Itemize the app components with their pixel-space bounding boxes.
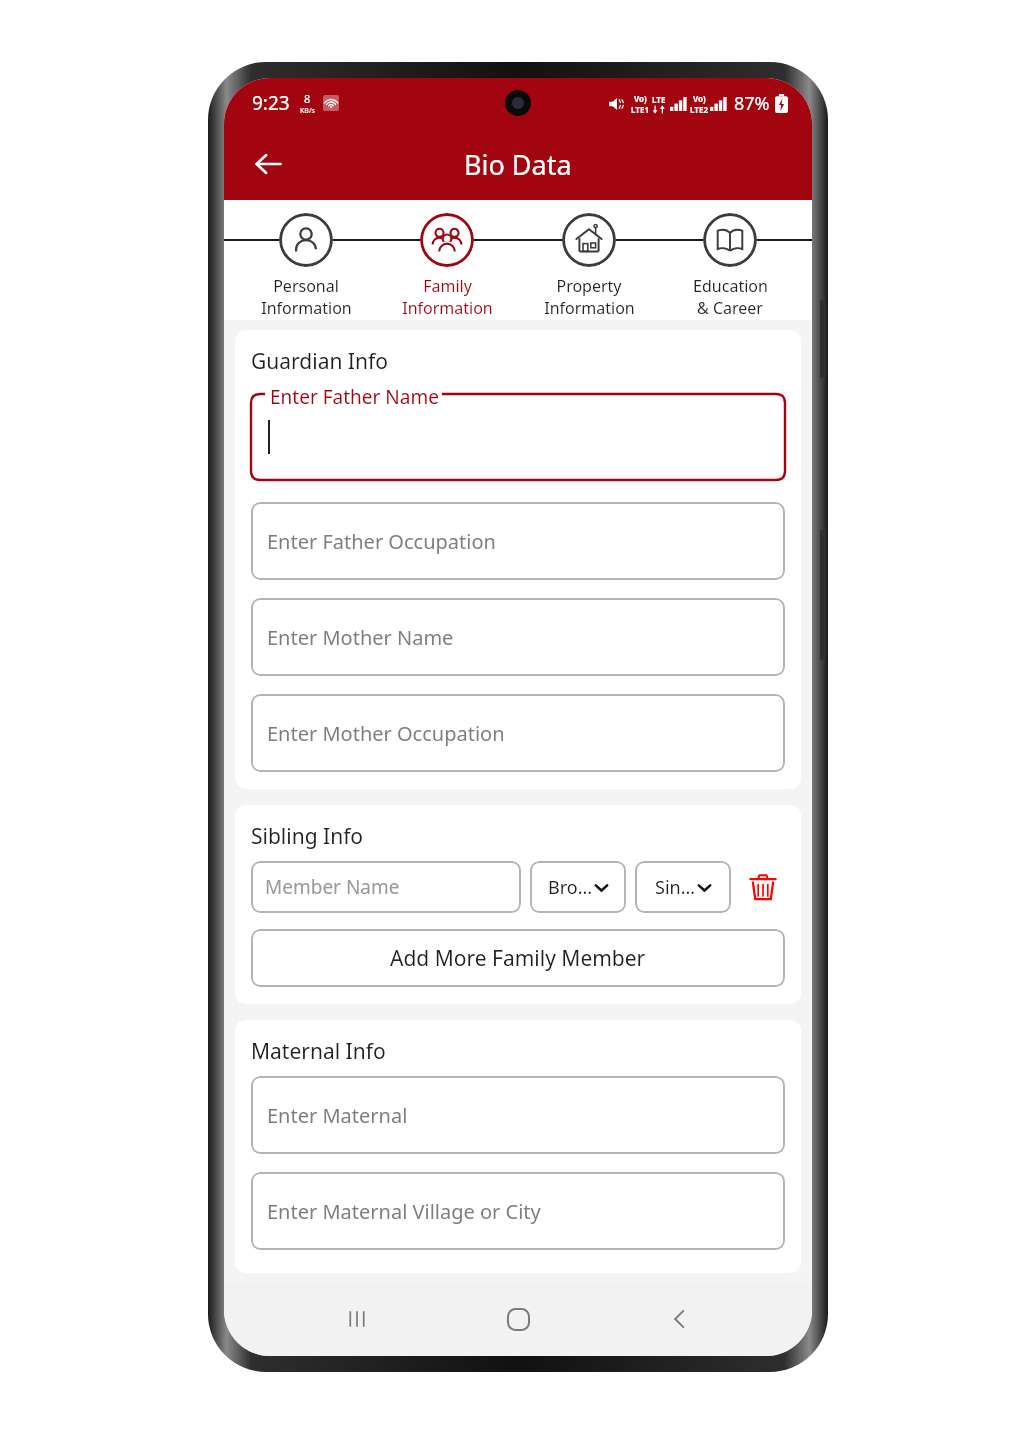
button[interactable]: Personal bbox=[247, 200, 365, 319]
staticText: Bro... bbox=[548, 875, 593, 900]
button[interactable]: Enter Maternal bbox=[251, 1076, 785, 1154]
staticText: Information bbox=[261, 297, 352, 319]
staticText: Add More Family Member bbox=[390, 944, 646, 973]
button[interactable]: Enter Mother Name bbox=[251, 598, 785, 676]
staticText: Enter Maternal bbox=[267, 1102, 408, 1129]
staticText: LTE2 bbox=[690, 104, 708, 115]
staticText: Maternal Info bbox=[251, 1037, 386, 1066]
staticText: Information bbox=[402, 297, 493, 319]
staticText: Education bbox=[693, 275, 768, 297]
button[interactable]: Member Name bbox=[251, 861, 521, 913]
button[interactable]: Bro... bbox=[530, 861, 626, 913]
staticText: LTE1 bbox=[631, 104, 649, 115]
staticText: Property bbox=[556, 275, 622, 297]
staticText: Family bbox=[423, 275, 472, 297]
button[interactable]: Enter Father Occupation bbox=[251, 502, 785, 580]
staticText: Information bbox=[544, 297, 635, 319]
button[interactable]: Delete sibling bbox=[741, 865, 785, 909]
button[interactable]: Enter Father Name bbox=[251, 384, 785, 480]
button[interactable]: Home bbox=[489, 1290, 547, 1348]
staticText: Enter Father Occupation bbox=[267, 528, 496, 555]
button[interactable]: Sin... bbox=[635, 861, 731, 913]
staticText: 8 bbox=[304, 91, 311, 106]
staticText: Sibling Info bbox=[251, 822, 364, 851]
staticText: 9:23 bbox=[252, 90, 290, 116]
staticText: Sin... bbox=[655, 875, 696, 900]
staticText: Enter Mother Occupation bbox=[267, 720, 505, 747]
button[interactable]: Back bbox=[651, 1290, 709, 1348]
staticText: 87% bbox=[734, 91, 770, 116]
staticText: Guardian Info bbox=[251, 347, 388, 376]
staticText: Enter Maternal Village or City bbox=[267, 1198, 541, 1225]
staticText: Personal bbox=[273, 275, 339, 297]
staticText: Enter Father Name bbox=[270, 384, 439, 410]
button[interactable]: Enter Maternal Village or City bbox=[251, 1172, 785, 1250]
staticText: Enter Mother Name bbox=[267, 624, 454, 651]
staticText: LTE bbox=[652, 94, 666, 105]
staticText: Vo) bbox=[634, 93, 647, 104]
button[interactable]: Enter Mother Occupation bbox=[251, 694, 785, 772]
button[interactable]: Family bbox=[388, 200, 506, 319]
button[interactable]: Property bbox=[530, 200, 648, 319]
staticText: & Career bbox=[697, 297, 763, 319]
button[interactable]: Add More Family Member bbox=[251, 929, 785, 987]
button[interactable]: Education bbox=[671, 200, 789, 319]
staticText: Member Name bbox=[265, 874, 400, 900]
button[interactable]: Back bbox=[242, 138, 294, 190]
staticText: Vo) bbox=[693, 93, 706, 104]
staticText: KB/s bbox=[300, 106, 315, 116]
button[interactable]: Recent apps bbox=[328, 1290, 386, 1348]
staticText: Bio Data bbox=[464, 146, 572, 183]
